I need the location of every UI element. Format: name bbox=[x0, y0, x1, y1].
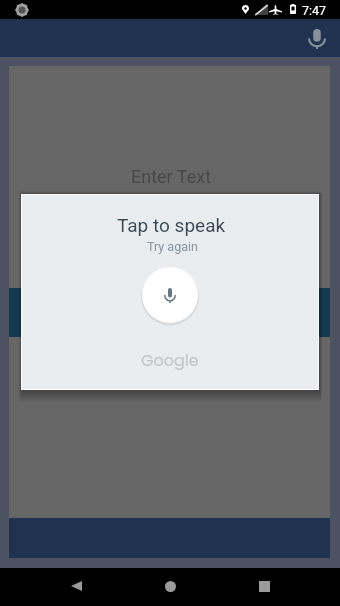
staticText: Tap to speak bbox=[117, 214, 226, 236]
button[interactable] bbox=[9, 288, 330, 337]
staticText: 7:47 bbox=[302, 3, 327, 18]
staticText: Enter Text bbox=[131, 166, 212, 187]
staticText: Try again bbox=[147, 239, 198, 254]
button[interactable]: Back bbox=[56, 567, 96, 605]
button[interactable]: Tap to speak bbox=[142, 267, 198, 323]
button[interactable]: Recent apps bbox=[244, 567, 284, 605]
button[interactable]: Home bbox=[150, 567, 190, 605]
button[interactable]: Voice search bbox=[303, 25, 331, 53]
staticText: Google bbox=[141, 349, 199, 371]
